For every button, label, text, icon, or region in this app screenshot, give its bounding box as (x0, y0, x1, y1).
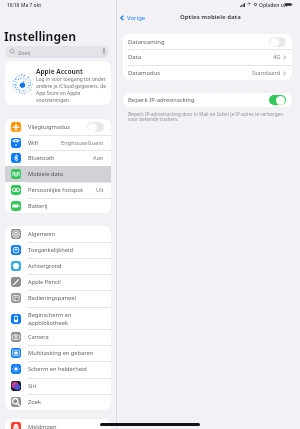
staticText: Meldingen (28, 423, 57, 429)
staticText: appbibliotheek (28, 319, 69, 327)
button[interactable]: Zoek (5, 46, 109, 58)
button[interactable]: Bedieningspaneel (5, 290, 111, 306)
staticText: Data (128, 53, 142, 61)
button[interactable]: Beperk IP-adrestracking (123, 93, 292, 107)
button[interactable]: Dataroaming (123, 34, 292, 49)
staticText: Bluetooth (28, 154, 55, 162)
staticText: Uit (96, 186, 104, 194)
staticText: Opties mobiele data (180, 13, 241, 21)
button[interactable]: Apple Pencil (5, 274, 111, 290)
button[interactable]: Vorige (118, 12, 148, 24)
button[interactable]: Camera (5, 329, 111, 345)
staticText: Algemeen (28, 230, 56, 238)
staticText: Mobiele data (28, 170, 63, 178)
staticText: Vorige (127, 14, 146, 22)
button[interactable]: Switch on (269, 95, 286, 105)
staticText: Apple Account (36, 67, 83, 76)
staticText: Multitasking en gebaren (28, 349, 94, 357)
staticText: Opladen uit (259, 2, 288, 9)
staticText: Beperk IP-adrestracking door in Mail en … (128, 111, 285, 123)
button[interactable]: Siri (5, 378, 111, 394)
staticText: Siri (28, 382, 37, 390)
staticText: Apple Pencil (28, 278, 61, 286)
button[interactable]: Beginscherm en (5, 307, 111, 330)
staticText: Wifi (28, 139, 39, 147)
staticText: Beperk IP-adrestracking (128, 96, 195, 104)
staticText: Beginscherm en (28, 311, 72, 319)
staticText: Bedieningspaneel (28, 294, 76, 302)
button[interactable]: Batterij (5, 198, 111, 213)
staticText: Zoek (18, 49, 31, 56)
button[interactable]: Scherm en helderheid (5, 361, 111, 377)
button[interactable]: Persoonlijke hotspot (5, 182, 111, 198)
button[interactable]: Meldingen (5, 419, 111, 429)
staticText: 10:18 (7, 2, 20, 9)
button[interactable]: Switch off (87, 122, 104, 132)
button[interactable]: Datamodus (123, 65, 292, 80)
staticText: Scherm en helderheid (28, 365, 87, 373)
staticText: Achtergrond (28, 262, 62, 270)
button[interactable]: Multitasking en gebaren (5, 345, 111, 361)
staticText: Zoek (28, 398, 41, 406)
staticText: Instellingen (4, 28, 76, 44)
button[interactable]: Zoek (5, 394, 111, 410)
button[interactable]: Achtergrond (5, 258, 111, 274)
other: Dictate (102, 48, 106, 55)
staticText: Camera (28, 333, 49, 341)
staticText: Batterij (28, 202, 48, 210)
staticText: Persoonlijke hotspot (28, 186, 83, 194)
button[interactable]: Switch off (269, 37, 286, 47)
button[interactable]: Toegankelijkheid (5, 242, 111, 258)
button[interactable]: Bluetooth (5, 150, 111, 166)
staticText: Dataroaming (128, 38, 165, 46)
staticText: Datamodus (128, 69, 161, 77)
staticText: Ma 7 okt (21, 2, 42, 9)
button[interactable]: Algemeen (5, 226, 111, 242)
button[interactable]: Wifi (5, 135, 111, 151)
button[interactable]: Vliegtuigmodus (5, 119, 111, 135)
staticText: Aan (93, 154, 104, 162)
staticText: Log in voor toegang tot onder andere je … (36, 76, 107, 104)
staticText: Vliegtuigmodus (28, 123, 71, 131)
staticText: Toegankelijkheid (28, 246, 73, 254)
staticText: EnghouseGuest (61, 139, 104, 147)
staticText: 4G (273, 53, 281, 61)
button[interactable]: Data (123, 49, 292, 64)
button[interactable]: Mobiele data (5, 166, 111, 182)
staticText: Standaard (252, 69, 281, 77)
